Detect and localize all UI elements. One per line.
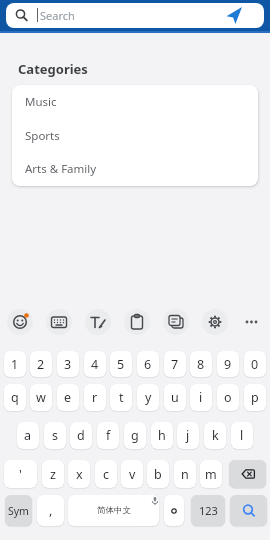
staticText: c bbox=[103, 466, 110, 483]
staticText: Arts & Family bbox=[25, 161, 97, 177]
staticText: x bbox=[76, 466, 83, 483]
button[interactable]: a bbox=[17, 422, 39, 449]
button[interactable] bbox=[164, 495, 184, 526]
staticText: y bbox=[145, 389, 152, 406]
button[interactable]: Music bbox=[12, 85, 258, 119]
button[interactable]: d bbox=[70, 422, 92, 449]
button[interactable]: g bbox=[124, 422, 146, 449]
staticText: 0 bbox=[251, 356, 259, 373]
staticText: k bbox=[212, 427, 219, 444]
staticText: 3 bbox=[64, 356, 72, 373]
button[interactable]: h bbox=[151, 422, 173, 449]
button[interactable]: u bbox=[164, 384, 186, 411]
staticText: h bbox=[158, 427, 166, 444]
staticText: Sports bbox=[25, 128, 60, 144]
staticText: 简体中文 bbox=[97, 505, 131, 516]
staticText: Music bbox=[25, 94, 57, 110]
staticText: 6 bbox=[144, 356, 152, 373]
button[interactable] bbox=[85, 309, 111, 335]
button[interactable]: Arts & Family bbox=[12, 152, 258, 186]
button[interactable]: ' bbox=[4, 460, 37, 488]
button[interactable]: 8 bbox=[190, 351, 212, 377]
button[interactable]: 4 bbox=[84, 351, 106, 377]
staticText: n bbox=[181, 466, 189, 483]
staticText: 1 bbox=[11, 356, 19, 373]
button[interactable]: m bbox=[200, 460, 222, 488]
button[interactable] bbox=[6, 3, 264, 28]
button[interactable] bbox=[240, 309, 266, 335]
staticText: a bbox=[24, 427, 32, 444]
button[interactable] bbox=[46, 309, 72, 335]
staticText: Categories bbox=[18, 60, 88, 78]
button[interactable] bbox=[202, 309, 228, 335]
button[interactable]: b bbox=[147, 460, 169, 488]
staticText: i bbox=[199, 389, 203, 406]
button[interactable]: y bbox=[137, 384, 159, 411]
staticText: d bbox=[77, 427, 85, 444]
staticText: z bbox=[50, 466, 56, 483]
staticText: v bbox=[129, 466, 136, 483]
staticText: j bbox=[186, 427, 190, 444]
button[interactable]: j bbox=[177, 422, 199, 449]
button[interactable]: Sports bbox=[12, 119, 258, 153]
button[interactable]: x bbox=[68, 460, 90, 488]
button[interactable]: c bbox=[95, 460, 117, 488]
button[interactable] bbox=[7, 309, 33, 335]
button[interactable]: w bbox=[30, 384, 52, 411]
button[interactable] bbox=[124, 309, 150, 335]
staticText: Sym bbox=[8, 504, 29, 518]
button[interactable]: 7 bbox=[164, 351, 186, 377]
staticText: g bbox=[131, 427, 139, 444]
button[interactable]: s bbox=[44, 422, 66, 449]
button[interactable]: 6 bbox=[137, 351, 159, 377]
button[interactable]: 1 bbox=[4, 351, 26, 377]
button[interactable]: 123 bbox=[191, 495, 225, 526]
staticText: r bbox=[92, 389, 98, 406]
button[interactable]: 0 bbox=[244, 351, 266, 377]
button[interactable]: t bbox=[110, 384, 132, 411]
staticText: Search bbox=[40, 8, 75, 23]
button[interactable]: r bbox=[84, 384, 106, 411]
button[interactable] bbox=[230, 495, 267, 526]
button[interactable]: k bbox=[204, 422, 226, 449]
button[interactable]: q bbox=[4, 384, 26, 411]
button[interactable]: 简体中文 bbox=[68, 495, 159, 526]
staticText: t bbox=[119, 389, 124, 406]
staticText: 123 bbox=[199, 503, 218, 518]
staticText: q bbox=[11, 389, 19, 406]
button[interactable]: v bbox=[121, 460, 143, 488]
button[interactable]: 2 bbox=[30, 351, 52, 377]
staticText: m bbox=[205, 466, 217, 483]
button[interactable]: Sym bbox=[5, 495, 32, 526]
button[interactable]: 5 bbox=[110, 351, 132, 377]
staticText: 2 bbox=[37, 356, 45, 373]
staticText: 7 bbox=[171, 356, 179, 373]
staticText: ' bbox=[19, 466, 22, 483]
staticText: 5 bbox=[117, 356, 125, 373]
button[interactable] bbox=[163, 309, 189, 335]
staticText: e bbox=[64, 389, 72, 406]
button[interactable]: , bbox=[37, 495, 64, 526]
staticText: b bbox=[154, 466, 162, 483]
button[interactable]: l bbox=[231, 422, 253, 449]
staticText: 4 bbox=[91, 356, 99, 373]
staticText: 9 bbox=[224, 356, 232, 373]
button[interactable]: o bbox=[217, 384, 239, 411]
staticText: o bbox=[224, 389, 232, 406]
button[interactable]: 3 bbox=[57, 351, 79, 377]
staticText: 8 bbox=[197, 356, 205, 373]
staticText: u bbox=[171, 389, 179, 406]
button[interactable]: e bbox=[57, 384, 79, 411]
button[interactable]: 9 bbox=[217, 351, 239, 377]
button[interactable]: n bbox=[174, 460, 196, 488]
button[interactable] bbox=[222, 3, 246, 27]
button[interactable]: i bbox=[190, 384, 212, 411]
staticText: s bbox=[52, 427, 58, 444]
staticText: l bbox=[240, 427, 244, 444]
button[interactable]: z bbox=[42, 460, 64, 488]
staticText: f bbox=[106, 427, 111, 444]
button[interactable]: f bbox=[97, 422, 119, 449]
staticText: w bbox=[36, 389, 46, 406]
button[interactable] bbox=[229, 460, 266, 488]
button[interactable]: p bbox=[244, 384, 266, 411]
